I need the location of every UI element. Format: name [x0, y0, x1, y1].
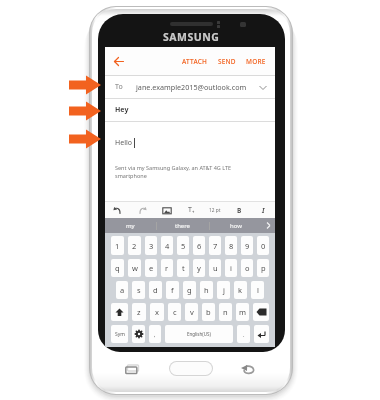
- staticText: T₊: [188, 205, 195, 215]
- button[interactable]: my: [105, 218, 156, 233]
- button[interactable]: 1: [111, 236, 124, 255]
- button[interactable]: Format: [155, 202, 179, 218]
- staticText: jane.example2015@outlook.com: [136, 82, 247, 92]
- button[interactable]: p: [257, 259, 269, 277]
- staticText: l: [257, 285, 259, 295]
- staticText: k: [238, 285, 243, 295]
- button[interactable]: 9: [241, 236, 253, 255]
- button[interactable]: u: [209, 259, 221, 277]
- staticText: Sent via my Samsung Galaxy, an AT&T 4G L…: [115, 164, 232, 180]
- staticText: v: [190, 307, 194, 317]
- button[interactable]: 2: [128, 236, 141, 255]
- button[interactable]: b: [202, 303, 215, 321]
- button[interactable]: Hey: [105, 99, 275, 121]
- button[interactable]: [254, 325, 269, 343]
- button[interactable]: g: [183, 281, 196, 299]
- button[interactable]: Home: [169, 361, 213, 376]
- button[interactable]: 5: [177, 236, 189, 255]
- button[interactable]: Recents: [123, 362, 141, 376]
- button[interactable]: r: [161, 259, 173, 277]
- staticText: n: [223, 307, 228, 317]
- staticText: t: [182, 263, 185, 273]
- button[interactable]: c: [168, 303, 181, 321]
- button[interactable]: ATTACH: [177, 47, 213, 75]
- button[interactable]: x: [150, 303, 164, 321]
- button[interactable]: h: [200, 281, 213, 299]
- button[interactable]: .: [237, 325, 250, 343]
- button[interactable]: z: [132, 303, 146, 321]
- button[interactable]: Format: [179, 202, 203, 218]
- staticText: 12 pt: [209, 207, 221, 214]
- button[interactable]: k: [234, 281, 247, 299]
- staticText: 7: [213, 241, 218, 251]
- button[interactable]: w: [128, 259, 141, 277]
- staticText: r: [165, 263, 169, 273]
- staticText: 1: [115, 241, 120, 251]
- staticText: c: [173, 307, 177, 317]
- button[interactable]: there: [157, 218, 209, 233]
- button[interactable]: 4: [161, 236, 173, 255]
- staticText: p: [261, 263, 266, 273]
- button[interactable]: q: [111, 259, 124, 277]
- staticText: my: [126, 222, 135, 230]
- button[interactable]: Format: [251, 202, 275, 218]
- button[interactable]: a: [116, 281, 128, 299]
- button[interactable]: y: [193, 259, 205, 277]
- button[interactable]: English(US): [165, 325, 233, 343]
- button[interactable]: v: [185, 303, 198, 321]
- button[interactable]: Back: [237, 362, 259, 376]
- staticText: 3: [149, 241, 154, 251]
- button[interactable]: e: [145, 259, 157, 277]
- button[interactable]: l: [251, 281, 264, 299]
- button[interactable]: Hello: [105, 122, 275, 163]
- button[interactable]: o: [241, 259, 253, 277]
- button[interactable]: Sym: [111, 325, 128, 343]
- button[interactable]: [132, 325, 145, 343]
- staticText: g: [187, 285, 192, 295]
- staticText: English(US): [187, 331, 211, 337]
- staticText: Hey: [115, 105, 129, 115]
- button[interactable]: s: [132, 281, 145, 299]
- staticText: a: [120, 285, 125, 295]
- button[interactable]: Format: [203, 202, 227, 218]
- button[interactable]: d: [149, 281, 162, 299]
- staticText: 6: [197, 241, 202, 251]
- button[interactable]: 7: [209, 236, 221, 255]
- button[interactable]: Back: [105, 47, 131, 75]
- button[interactable]: j: [217, 281, 230, 299]
- staticText: u: [213, 263, 218, 273]
- button[interactable]: Format: [105, 202, 130, 218]
- staticText: B: [237, 206, 242, 215]
- button[interactable]: 0: [257, 236, 269, 255]
- button[interactable]: More suggestions: [262, 218, 275, 233]
- button[interactable]: MORE: [241, 47, 271, 75]
- staticText: e: [149, 263, 154, 273]
- staticText: d: [153, 285, 158, 295]
- staticText: SEND: [218, 57, 236, 66]
- button[interactable]: SEND: [213, 47, 241, 75]
- button[interactable]: i: [225, 259, 237, 277]
- staticText: Sym: [115, 331, 125, 338]
- staticText: how: [230, 222, 242, 230]
- button[interactable]: [111, 303, 128, 321]
- button[interactable]: 8: [225, 236, 237, 255]
- button[interactable]: how: [210, 218, 262, 233]
- staticText: j: [223, 285, 225, 295]
- staticText: there: [175, 222, 191, 230]
- button[interactable]: To: [105, 76, 275, 98]
- button[interactable]: Format: [227, 202, 251, 218]
- staticText: w: [132, 263, 138, 273]
- button[interactable]: t: [177, 259, 189, 277]
- button[interactable]: [253, 303, 269, 321]
- button[interactable]: 3: [145, 236, 157, 255]
- button[interactable]: 6: [193, 236, 205, 255]
- button[interactable]: ,: [149, 325, 161, 343]
- button[interactable]: Format: [130, 202, 155, 218]
- staticText: z: [137, 307, 141, 317]
- button[interactable]: m: [236, 303, 249, 321]
- button[interactable]: f: [166, 281, 179, 299]
- staticText: .: [243, 331, 245, 338]
- staticText: y: [197, 263, 201, 273]
- button[interactable]: n: [219, 303, 232, 321]
- staticText: s: [137, 285, 141, 295]
